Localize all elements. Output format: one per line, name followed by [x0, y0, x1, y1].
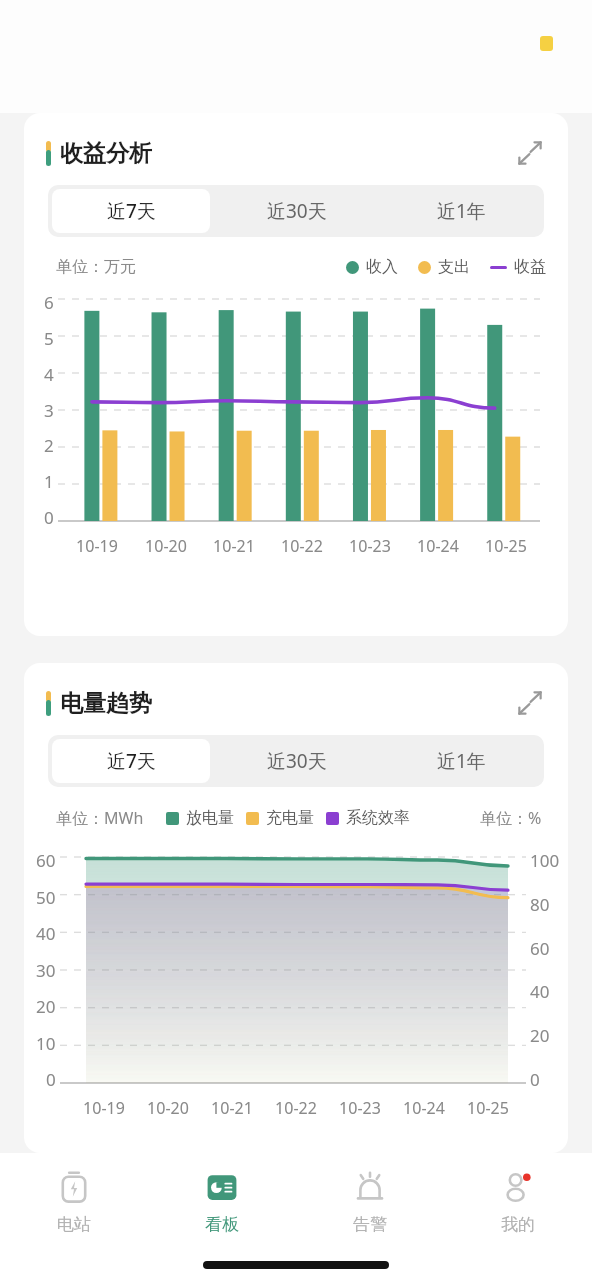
staticText: 近7天	[107, 748, 156, 774]
button[interactable]: 近1年	[383, 189, 540, 233]
staticText: 近30天	[267, 198, 327, 224]
staticText: 20	[530, 1024, 550, 1047]
staticText: 支出	[438, 257, 470, 277]
staticText: 10-19	[76, 535, 118, 557]
staticText: 单位：万元	[56, 257, 136, 277]
staticText: 0	[44, 506, 54, 529]
staticText: 0	[530, 1068, 540, 1091]
staticText: 近1年	[437, 198, 486, 224]
button[interactable]: 告警	[296, 1153, 444, 1249]
button[interactable]: 近30天	[218, 189, 375, 233]
staticText: 100	[530, 849, 560, 872]
staticText: 10-24	[417, 535, 459, 557]
button[interactable]: 我的	[444, 1153, 592, 1249]
staticText: 10-23	[349, 535, 391, 557]
staticText: 10-22	[275, 1097, 317, 1119]
button[interactable]: 近1年	[383, 739, 540, 783]
button[interactable]: 近30天	[218, 739, 375, 783]
staticText: 80	[530, 893, 550, 916]
staticText: 告警	[353, 1214, 387, 1235]
staticText: 收益分析	[60, 139, 152, 168]
staticText: 20	[36, 995, 56, 1018]
staticText: 近30天	[267, 748, 327, 774]
staticText: 1	[44, 470, 54, 493]
staticText: 近7天	[107, 198, 156, 224]
staticText: 2	[44, 434, 54, 457]
staticText: 10	[36, 1032, 56, 1055]
button[interactable]: 近7天	[52, 739, 210, 783]
staticText: 充电量	[266, 808, 314, 828]
staticText: 5	[44, 327, 54, 350]
staticText: 系统效率	[346, 808, 410, 828]
staticText: 4	[44, 363, 54, 386]
button[interactable]: 近7天	[52, 189, 210, 233]
staticText: 0	[46, 1068, 56, 1091]
staticText: 40	[530, 980, 550, 1003]
staticText: 3	[44, 399, 54, 422]
staticText: 收入	[366, 257, 398, 277]
staticText: 单位：%	[480, 807, 542, 829]
staticText: 电站	[57, 1214, 91, 1235]
staticText: 60	[530, 937, 550, 960]
button[interactable]: 电站	[0, 1153, 148, 1249]
staticText: 40	[36, 922, 56, 945]
staticText: 10-20	[145, 535, 187, 557]
staticText: 10-19	[83, 1097, 125, 1119]
staticText: 10-24	[403, 1097, 445, 1119]
staticText: 10-21	[213, 535, 255, 557]
staticText: 看板	[205, 1214, 239, 1235]
staticText: 10-23	[339, 1097, 381, 1119]
staticText: 10-25	[485, 535, 527, 557]
staticText: 10-21	[211, 1097, 253, 1119]
button[interactable]: 看板	[148, 1153, 296, 1249]
staticText: 我的	[501, 1214, 535, 1235]
staticText: 单位：MWh	[56, 807, 144, 829]
staticText: 50	[36, 886, 56, 909]
staticText: 电量趋势	[60, 689, 152, 718]
staticText: 10-22	[281, 535, 323, 557]
staticText: 10-25	[467, 1097, 509, 1119]
staticText: 6	[44, 291, 54, 314]
button[interactable]: Expand chart	[510, 135, 550, 171]
staticText: 10-20	[147, 1097, 189, 1119]
staticText: 收益	[514, 257, 546, 277]
staticText: 放电量	[186, 808, 234, 828]
button[interactable]: Expand chart	[510, 685, 550, 721]
staticText: 30	[36, 959, 56, 982]
staticText: 60	[36, 849, 56, 872]
staticText: 近1年	[437, 748, 486, 774]
